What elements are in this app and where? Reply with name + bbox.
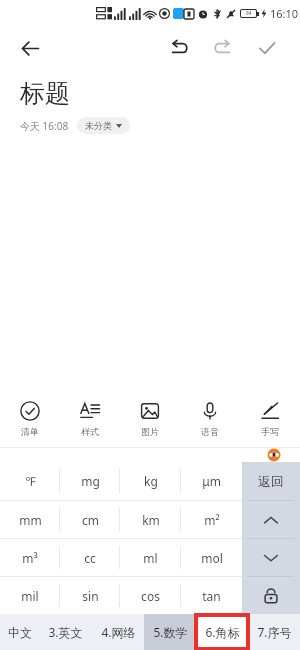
button[interactable]: IME logo [265,448,282,462]
staticText: 标题 [20,78,70,109]
button[interactable]: Undo [160,29,198,67]
staticText: 4.网络 [101,624,136,640]
staticText: ml [143,550,158,566]
staticText: 3.英文 [48,624,83,640]
button[interactable]: mm [0,501,60,538]
staticText: cm [82,512,99,528]
button[interactable]: ℉ [0,462,60,500]
staticText: 样式 [81,426,99,437]
staticText: mg [81,473,100,489]
button[interactable]: 语音 [180,391,240,447]
staticText: 5.数学 [153,624,188,640]
staticText: 6.角标 [205,624,240,640]
button[interactable]: Up [242,501,300,538]
button[interactable]: 6.角标 [196,614,248,650]
button[interactable]: cc [60,539,120,576]
staticText: 今天 16:08 [20,119,69,133]
button[interactable]: mil [0,577,60,614]
button[interactable]: 7.序号 [248,614,300,650]
staticText: m³ [22,550,38,566]
button[interactable]: 图片 [120,391,180,447]
staticText: kg [144,473,158,489]
staticText: 手写 [261,426,279,437]
staticText: ℉ [25,473,36,489]
staticText: 7.序号 [257,624,292,640]
button[interactable]: 未分类 [77,117,130,134]
button[interactable]: 中文 [0,614,39,650]
button[interactable]: Lock [242,577,300,614]
button[interactable]: tan [181,577,242,614]
staticText: 16:10 [270,6,299,21]
staticText: 清单 [21,426,39,437]
button[interactable]: Done [248,29,286,67]
button[interactable]: 手写 [240,391,300,447]
staticText: tan [202,588,221,604]
button[interactable]: 返回 [242,462,300,500]
button[interactable]: μm [181,462,242,500]
button[interactable]: sin [60,577,120,614]
button[interactable]: m³ [0,539,60,576]
staticText: m² [204,512,220,528]
button[interactable]: ml [120,539,181,576]
button[interactable]: Redo [204,29,242,67]
button[interactable]: cm [60,501,120,538]
staticText: 语音 [201,426,219,437]
button[interactable]: 3.英文 [39,614,92,650]
staticText: cos [141,588,160,604]
staticText: 84 [246,10,252,17]
staticText: 图片 [141,426,159,437]
staticText: mm [19,512,42,528]
button[interactable]: 清单 [0,391,60,447]
staticText: 返回 [258,473,284,489]
staticText: sin [82,588,99,604]
button[interactable]: Down [242,539,300,576]
staticText: km [142,512,160,528]
button[interactable]: 4.网络 [92,614,144,650]
button[interactable]: km [120,501,181,538]
button[interactable]: cos [120,577,181,614]
staticText: 未分类 [85,120,112,131]
staticText: mil [21,588,39,604]
staticText: 中文 [8,625,32,640]
button[interactable]: 样式 [60,391,120,447]
staticText: μm [202,473,221,489]
button[interactable]: mg [60,462,120,500]
staticText: cc [84,550,96,566]
button[interactable]: m² [181,501,242,538]
button[interactable]: mol [181,539,242,576]
button[interactable]: Back [12,30,48,66]
button[interactable]: 5.数学 [144,614,196,650]
button[interactable]: kg [120,462,181,500]
staticText: mol [201,550,223,566]
